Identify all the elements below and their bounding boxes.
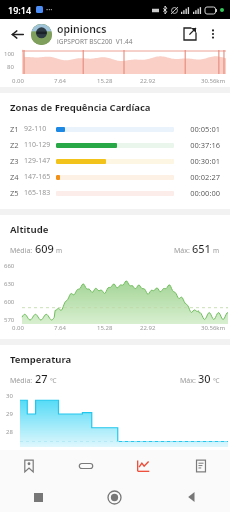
- staticText: Máx:: [174, 246, 192, 256]
- staticText: 651: [192, 241, 211, 256]
- button[interactable]: Share: [178, 22, 202, 46]
- staticText: 630: [4, 280, 15, 288]
- staticText: 22.92: [140, 77, 156, 85]
- staticText: 22.92: [140, 324, 156, 332]
- staticText: 110-129: [24, 140, 56, 150]
- button[interactable]: Z5: [10, 185, 220, 201]
- staticText: 00:02:27: [180, 172, 220, 182]
- button[interactable]: [31, 24, 52, 45]
- staticText: 30.56km: [201, 324, 226, 332]
- staticText: 80: [7, 63, 14, 71]
- staticText: ···: [46, 4, 53, 15]
- staticText: 600: [4, 298, 15, 306]
- staticText: m: [213, 246, 220, 255]
- button[interactable]: Z3: [10, 153, 220, 169]
- staticText: Média:: [10, 376, 35, 386]
- staticText: 30.56km: [201, 77, 226, 85]
- staticText: iGPSPORT BSC200 V1.44: [57, 37, 133, 46]
- staticText: Z1: [10, 124, 24, 134]
- staticText: 165-183: [24, 188, 56, 198]
- staticText: 00:00:00: [180, 188, 220, 198]
- staticText: 15.28: [97, 324, 113, 332]
- staticText: 147-165: [24, 172, 56, 182]
- button[interactable]: Devices: [57, 450, 114, 482]
- staticText: 00:05:01: [180, 124, 220, 134]
- staticText: Z2: [10, 140, 24, 150]
- button[interactable]: Bookmarks: [0, 450, 57, 482]
- staticText: 0.00: [12, 324, 24, 332]
- staticText: 660: [4, 262, 15, 270]
- staticText: Z5: [10, 188, 24, 198]
- button[interactable]: Z4: [10, 169, 220, 185]
- staticText: Zonas de Frequência Cardíaca: [10, 101, 151, 114]
- staticText: Máx:: [180, 376, 198, 386]
- staticText: ℃: [50, 376, 57, 385]
- staticText: opinioncs: [57, 22, 107, 36]
- button[interactable]: opinioncs: [57, 22, 178, 46]
- staticText: 28: [6, 428, 13, 436]
- staticText: ℃: [213, 376, 220, 385]
- staticText: 27: [35, 371, 48, 386]
- staticText: 609: [35, 241, 54, 256]
- staticText: 570: [4, 316, 15, 324]
- button[interactable]: More options: [202, 23, 224, 45]
- button[interactable]: Z1: [10, 121, 220, 137]
- staticText: Z3: [10, 156, 24, 166]
- staticText: 30: [198, 371, 211, 386]
- staticText: Altitude: [10, 223, 49, 236]
- staticText: 19:14: [8, 4, 32, 16]
- staticText: 30: [6, 392, 13, 400]
- staticText: 00:37:16: [180, 140, 220, 150]
- button[interactable]: Z2: [10, 137, 220, 153]
- button[interactable]: Statistics: [114, 450, 172, 482]
- staticText: 7.64: [54, 324, 66, 332]
- staticText: Z4: [10, 172, 24, 182]
- staticText: Temperatura: [10, 353, 72, 366]
- staticText: 29: [6, 410, 13, 418]
- staticText: Média:: [10, 246, 35, 256]
- staticText: 0.00: [12, 77, 24, 85]
- staticText: 7.64: [54, 77, 66, 85]
- button[interactable]: Reports: [172, 450, 230, 482]
- button[interactable]: Back: [6, 23, 28, 45]
- staticText: 129-147: [24, 156, 56, 166]
- staticText: m: [56, 246, 63, 255]
- staticText: 15.28: [97, 77, 113, 85]
- staticText: 92-110: [24, 124, 56, 134]
- staticText: 100: [4, 50, 15, 58]
- staticText: 00:30:01: [180, 156, 220, 166]
